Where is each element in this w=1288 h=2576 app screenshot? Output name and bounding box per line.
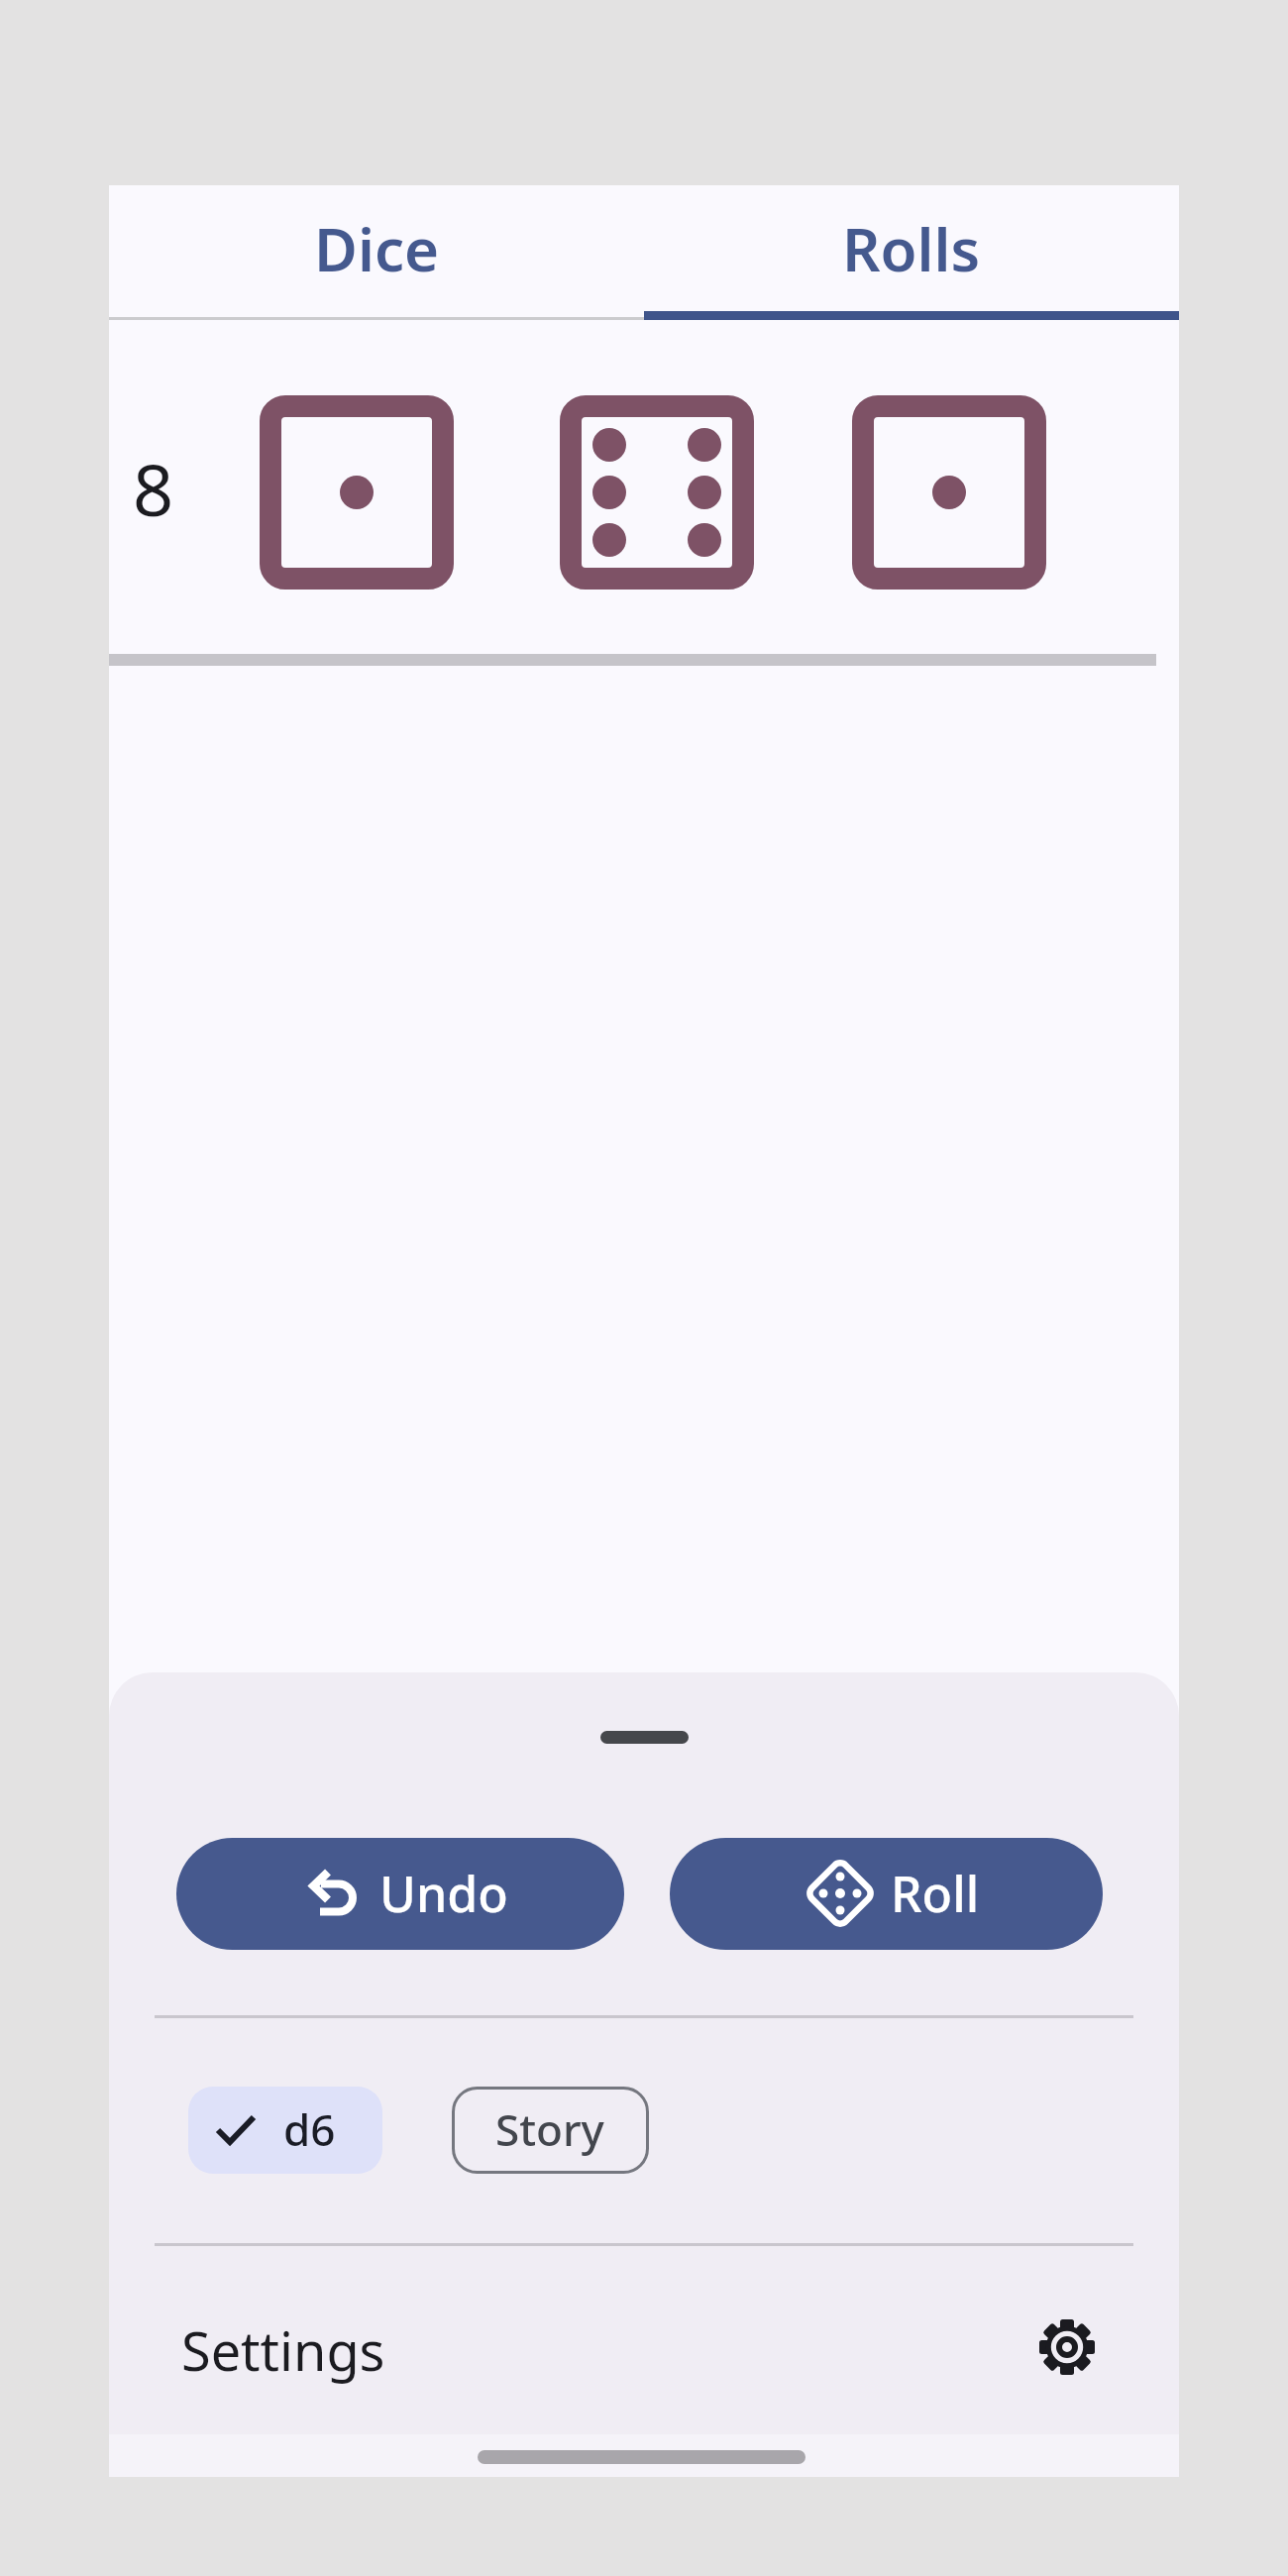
staticText: Undo	[379, 1860, 508, 1927]
staticText: Dice	[314, 208, 440, 289]
staticText: d6	[283, 2099, 336, 2159]
button[interactable]	[852, 395, 1046, 590]
button[interactable]	[109, 2291, 1179, 2410]
staticText: Roll	[891, 1860, 980, 1927]
staticText: 8	[133, 440, 174, 537]
staticText: Settings	[181, 2313, 385, 2387]
button[interactable]	[452, 2087, 649, 2174]
staticText: Rolls	[842, 208, 981, 289]
button[interactable]	[560, 395, 754, 590]
button[interactable]: Rolls	[644, 185, 1179, 312]
staticText: Story	[495, 2099, 604, 2159]
button[interactable]	[176, 1838, 624, 1950]
button[interactable]	[670, 1838, 1103, 1950]
button[interactable]	[188, 2087, 382, 2174]
button[interactable]: Dice	[109, 185, 644, 312]
button[interactable]	[260, 395, 454, 590]
